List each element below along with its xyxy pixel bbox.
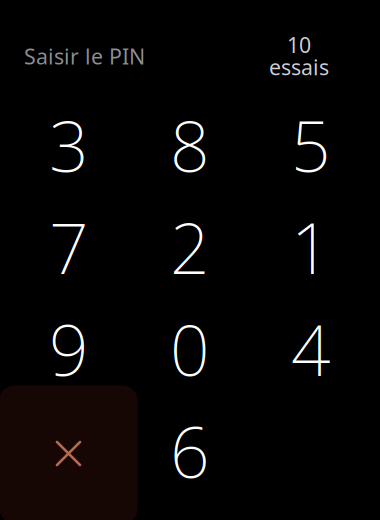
button[interactable]: 5 (250, 94, 371, 196)
button[interactable]: 9 (8, 298, 129, 400)
button[interactable]: 4 (250, 298, 371, 400)
staticText: 0 (170, 303, 210, 395)
staticText: 7 (49, 201, 89, 293)
staticText: 2 (170, 201, 210, 293)
button[interactable]: 2 (129, 196, 250, 298)
button[interactable]: 7 (8, 196, 129, 298)
staticText: 3 (49, 99, 89, 191)
button[interactable]: 1 (250, 196, 371, 298)
staticText: 1 (291, 201, 331, 293)
staticText: 6 (170, 405, 210, 497)
button[interactable]: 3 (8, 94, 129, 196)
staticText: 9 (49, 303, 89, 395)
staticText: 10 (287, 31, 311, 59)
staticText: 8 (170, 99, 210, 191)
staticText: Saisir le PIN (24, 42, 145, 70)
staticText: 4 (291, 303, 331, 395)
button[interactable]: 8 (129, 94, 250, 196)
button[interactable]: Annuler (8, 400, 129, 502)
staticText: essais (269, 53, 329, 81)
staticText: 5 (291, 99, 331, 191)
button[interactable]: 0 (129, 298, 250, 400)
button[interactable]: 6 (129, 400, 250, 502)
